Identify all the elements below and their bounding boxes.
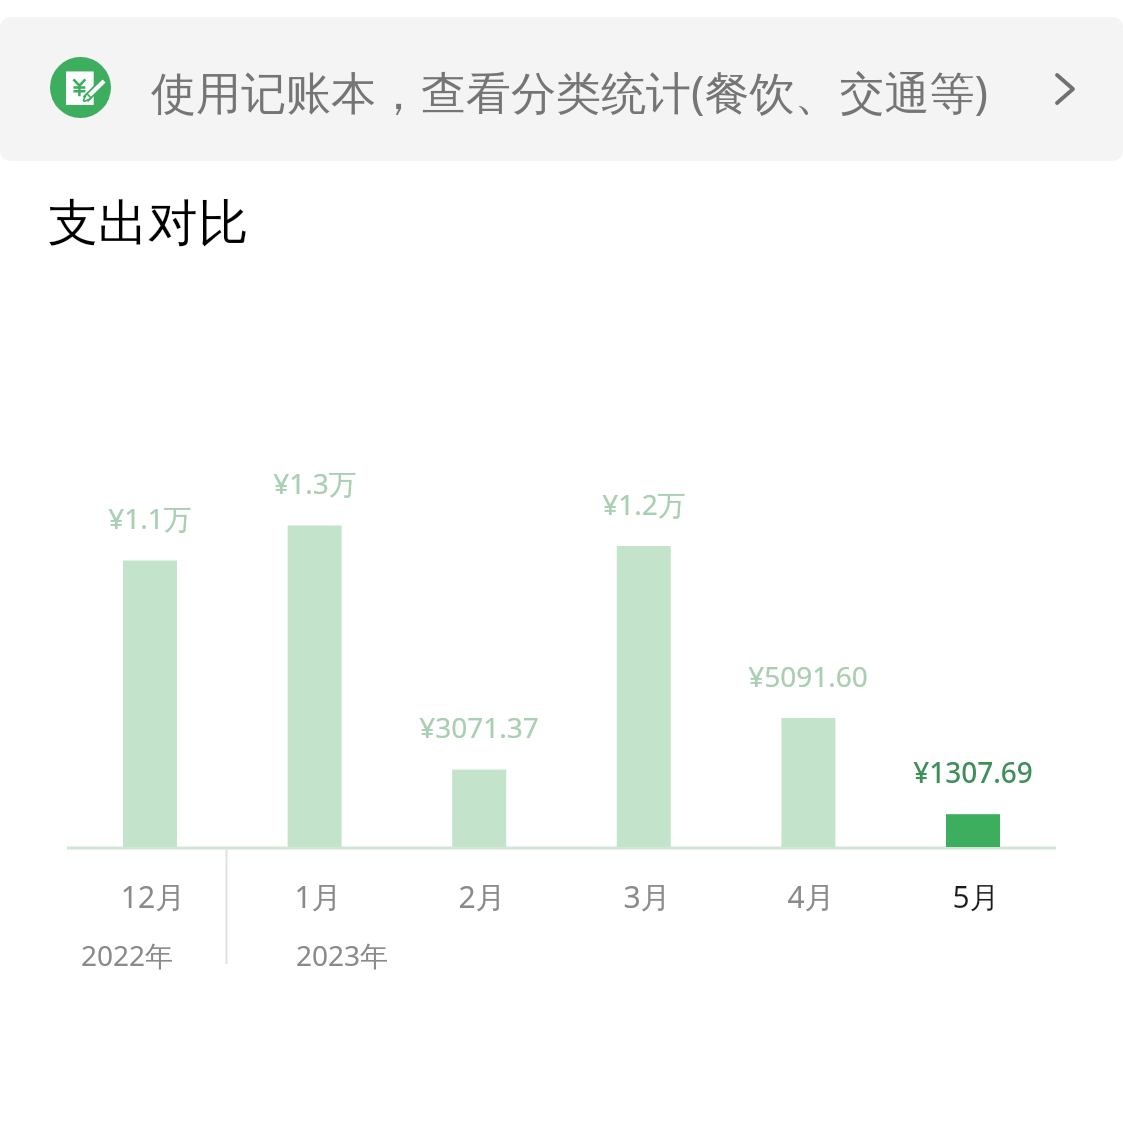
button[interactable]: 12月支出 <box>68 300 232 920</box>
staticText: ¥5091.60 <box>668 657 948 695</box>
staticText: 支出对比 <box>48 192 248 255</box>
other: 记账本 <box>50 57 111 118</box>
staticText: ¥1.1万 <box>10 499 290 537</box>
staticText: 2022年 <box>81 936 174 974</box>
button[interactable]: 查看记账本 <box>1031 39 1097 105</box>
button[interactable]: 4月支出 <box>726 300 890 920</box>
staticText: ¥1307.69 <box>833 753 1113 791</box>
staticText: 3月 <box>507 876 787 917</box>
button[interactable]: 1月支出 <box>233 300 397 920</box>
button[interactable]: 记账本 <box>0 17 1123 161</box>
staticText: 4月 <box>671 876 951 917</box>
button[interactable]: 3月支出 <box>562 300 726 920</box>
staticText: 2023年 <box>296 936 389 974</box>
staticText: 2月 <box>342 876 622 917</box>
staticText: 12月 <box>13 876 293 917</box>
button[interactable]: 5月支出 <box>891 300 1055 920</box>
staticText: ¥1.3万 <box>175 464 455 502</box>
staticText: 1月 <box>178 876 458 917</box>
staticText: ¥3071.37 <box>339 708 619 746</box>
staticText: ¥1.2万 <box>504 485 784 523</box>
staticText: 5月 <box>836 876 1116 917</box>
staticText: 使用记账本，查看分类统计(餐饮、交通等) <box>151 61 989 122</box>
button[interactable]: 2月支出 <box>397 300 561 920</box>
